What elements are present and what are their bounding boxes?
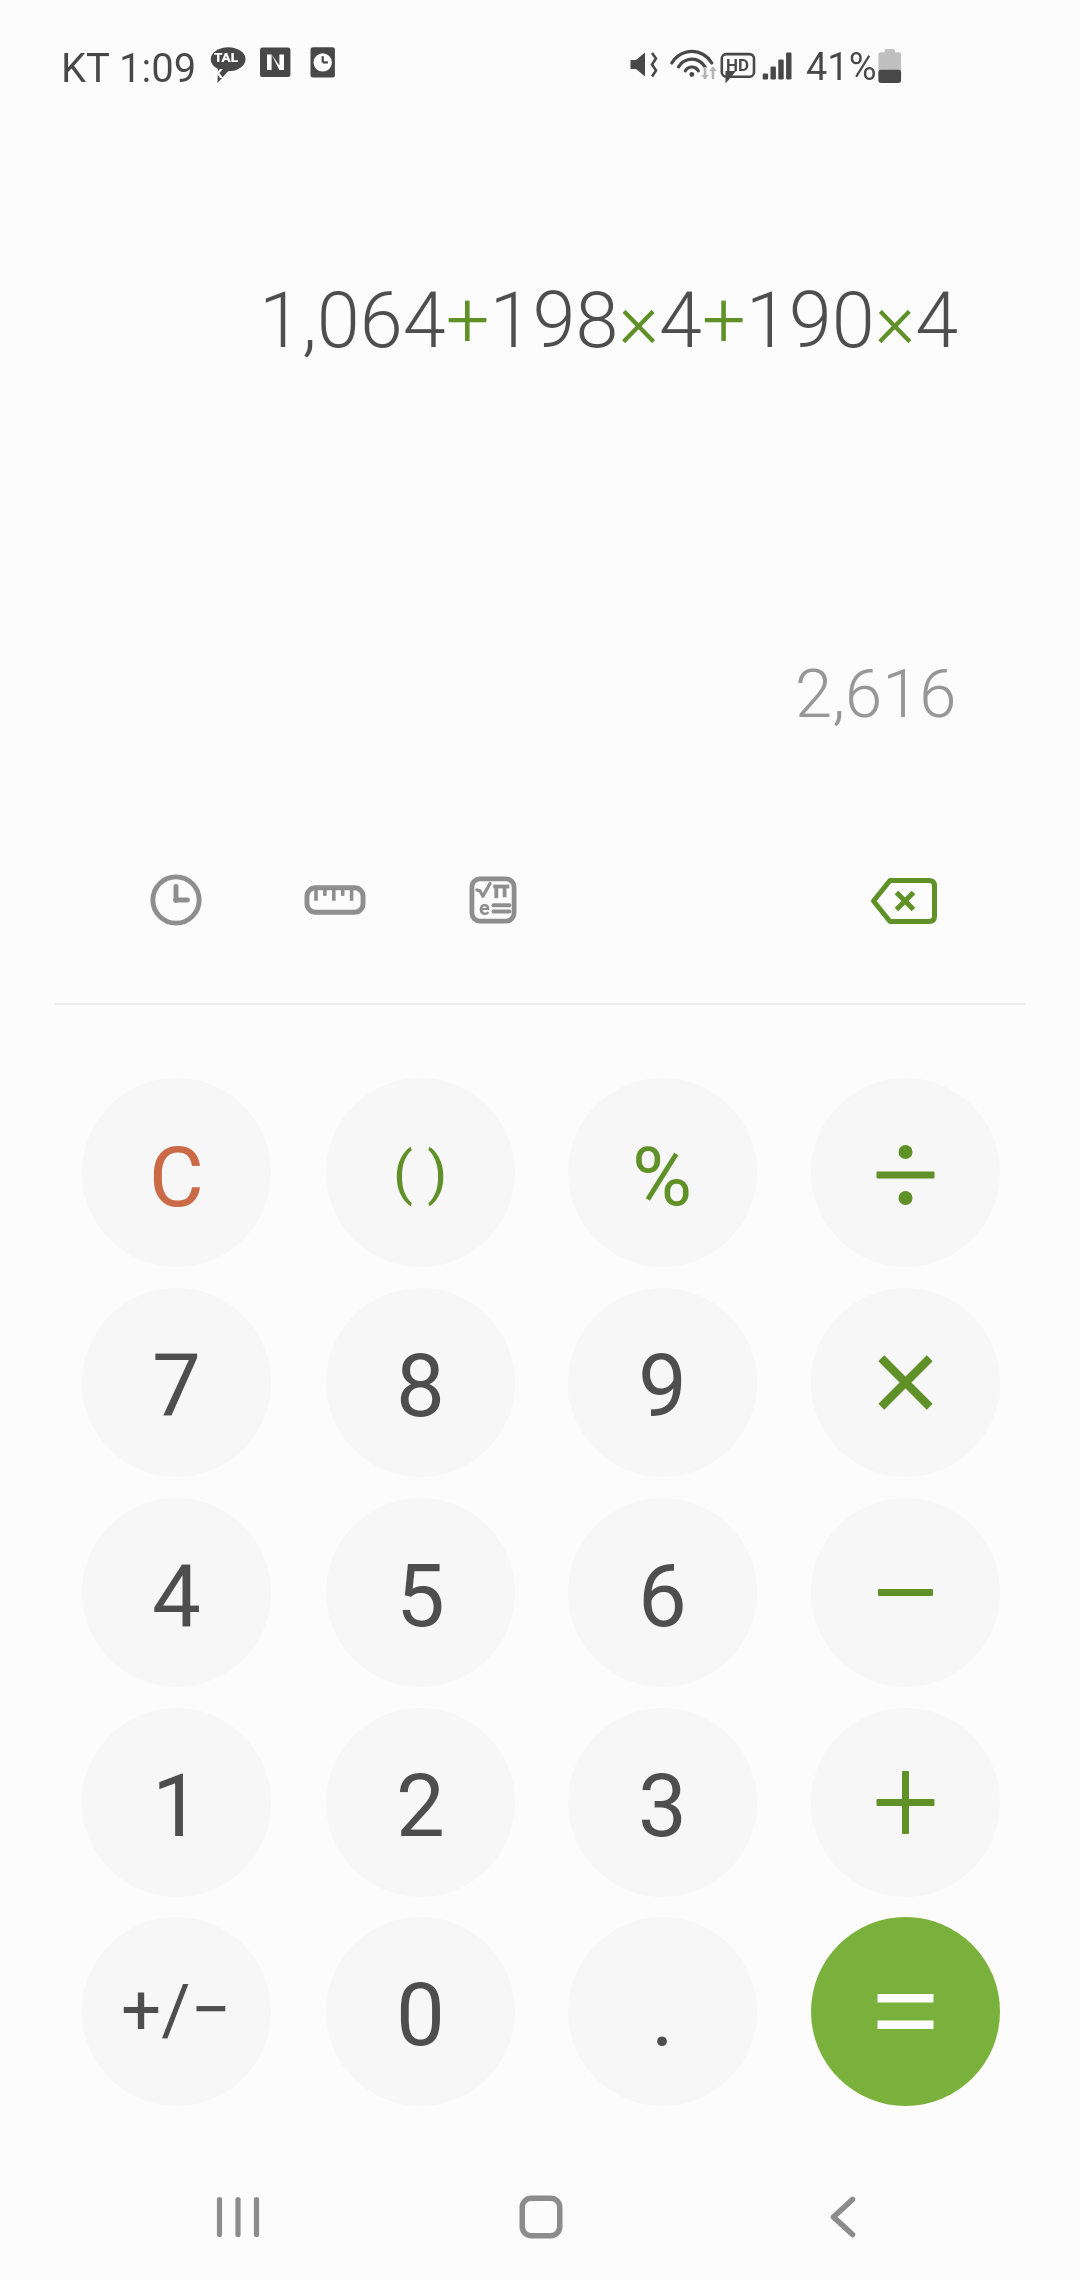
staticText: 8 [396, 1335, 445, 1437]
button[interactable]: History [121, 845, 231, 955]
button[interactable]: × [811, 1288, 1000, 1477]
button[interactable]: 2 [326, 1708, 515, 1897]
button[interactable]: Home [481, 2157, 601, 2277]
staticText: 1,064+198×4+190×4 [259, 275, 959, 366]
button[interactable]: ( ) [326, 1078, 515, 1267]
staticText: KT 1:09 [61, 45, 197, 92]
button[interactable]: − [811, 1498, 1000, 1687]
staticText: 0 [396, 1964, 445, 2066]
staticText: 41% [806, 45, 877, 90]
staticText: 2 [396, 1755, 445, 1857]
button[interactable]: + [811, 1708, 1000, 1897]
staticText: e [479, 896, 490, 916]
staticText: 4 [152, 1545, 201, 1647]
button[interactable]: % [568, 1078, 757, 1267]
button[interactable]: 5 [326, 1498, 515, 1687]
button[interactable]: C [82, 1078, 271, 1267]
button[interactable]: Scientific calculator [438, 845, 548, 955]
staticText: ( ) [393, 1139, 448, 1207]
staticText: 1 [152, 1755, 201, 1857]
staticText: 3 [638, 1755, 687, 1857]
button[interactable]: Unit converter [280, 845, 390, 955]
button[interactable]: ÷ [811, 1078, 1000, 1267]
button[interactable]: = [811, 1917, 1000, 2106]
button[interactable]: . [568, 1917, 757, 2106]
button[interactable]: 4 [82, 1498, 271, 1687]
staticText: 9 [638, 1335, 687, 1437]
button[interactable]: 9 [568, 1288, 757, 1477]
staticText: C [149, 1128, 204, 1226]
staticText: +/− [121, 1968, 232, 2051]
button[interactable]: 6 [568, 1498, 757, 1687]
button[interactable]: 1 [82, 1708, 271, 1897]
staticText: 5 [396, 1545, 445, 1647]
staticText: % [632, 1129, 693, 1225]
button[interactable]: Back [783, 2157, 903, 2277]
staticText: TALK [214, 49, 244, 81]
button[interactable]: Backspace [849, 846, 959, 956]
staticText: 2,616 [795, 655, 957, 734]
staticText: 7 [152, 1335, 201, 1437]
button[interactable]: 0 [326, 1917, 515, 2106]
button[interactable]: +/− [82, 1917, 271, 2106]
staticText: 6 [638, 1545, 687, 1647]
button[interactable]: 3 [568, 1708, 757, 1897]
button[interactable]: 8 [326, 1288, 515, 1477]
staticText: HD [726, 55, 750, 75]
staticText: . [651, 1964, 674, 2066]
button[interactable]: 7 [82, 1288, 271, 1477]
button[interactable]: Recent apps [178, 2157, 298, 2277]
